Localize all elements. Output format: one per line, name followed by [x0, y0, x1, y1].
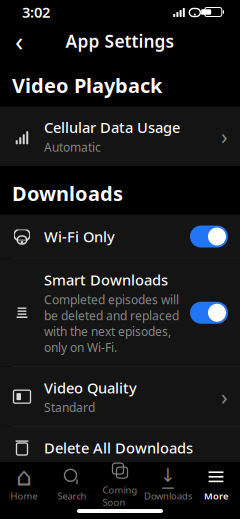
staticText: Cellular Data Usage	[44, 118, 180, 137]
staticText: Automatic	[44, 139, 101, 155]
button[interactable]: More	[192, 460, 240, 502]
staticText: Downloads	[12, 180, 123, 207]
staticText: Standard	[44, 399, 95, 415]
staticText: More	[204, 490, 228, 502]
button[interactable]: ↓	[144, 460, 192, 502]
staticText: ⌂	[16, 462, 32, 491]
button[interactable]: Cellular Data Usage	[0, 107, 240, 166]
staticText: Video Playback	[12, 72, 162, 99]
staticText: iPhone XR	[12, 478, 74, 496]
button[interactable]: ⌂	[0, 460, 48, 502]
button[interactable]: Search	[48, 460, 96, 502]
staticText: ↓	[160, 465, 176, 486]
staticText: Wi-Fi Only	[44, 227, 115, 246]
staticText: Completed episodes will be deleted and r…	[44, 292, 179, 355]
button[interactable]: Back	[0, 24, 38, 58]
staticText: Delete All Downloads	[44, 438, 193, 457]
button[interactable]: Coming Soon	[96, 454, 144, 508]
staticText: ›	[221, 382, 228, 411]
staticText: ›	[221, 122, 228, 150]
staticText: Search	[57, 490, 86, 502]
staticText: Video Quality	[44, 378, 137, 397]
staticText: Downloads	[144, 490, 192, 502]
staticText: Smart Downloads	[44, 270, 168, 290]
staticText: App Settings	[65, 29, 174, 52]
button[interactable]: Delete All Downloads	[0, 427, 240, 468]
button[interactable]: Video Quality	[0, 367, 240, 426]
staticText: Coming Soon	[102, 484, 137, 508]
staticText: 3:02	[22, 2, 50, 22]
button[interactable]: Smart Downloads	[0, 259, 240, 366]
staticText: Home	[10, 490, 37, 502]
button[interactable]: Wi-Fi Only	[0, 214, 240, 258]
staticText: ‹	[15, 23, 23, 59]
